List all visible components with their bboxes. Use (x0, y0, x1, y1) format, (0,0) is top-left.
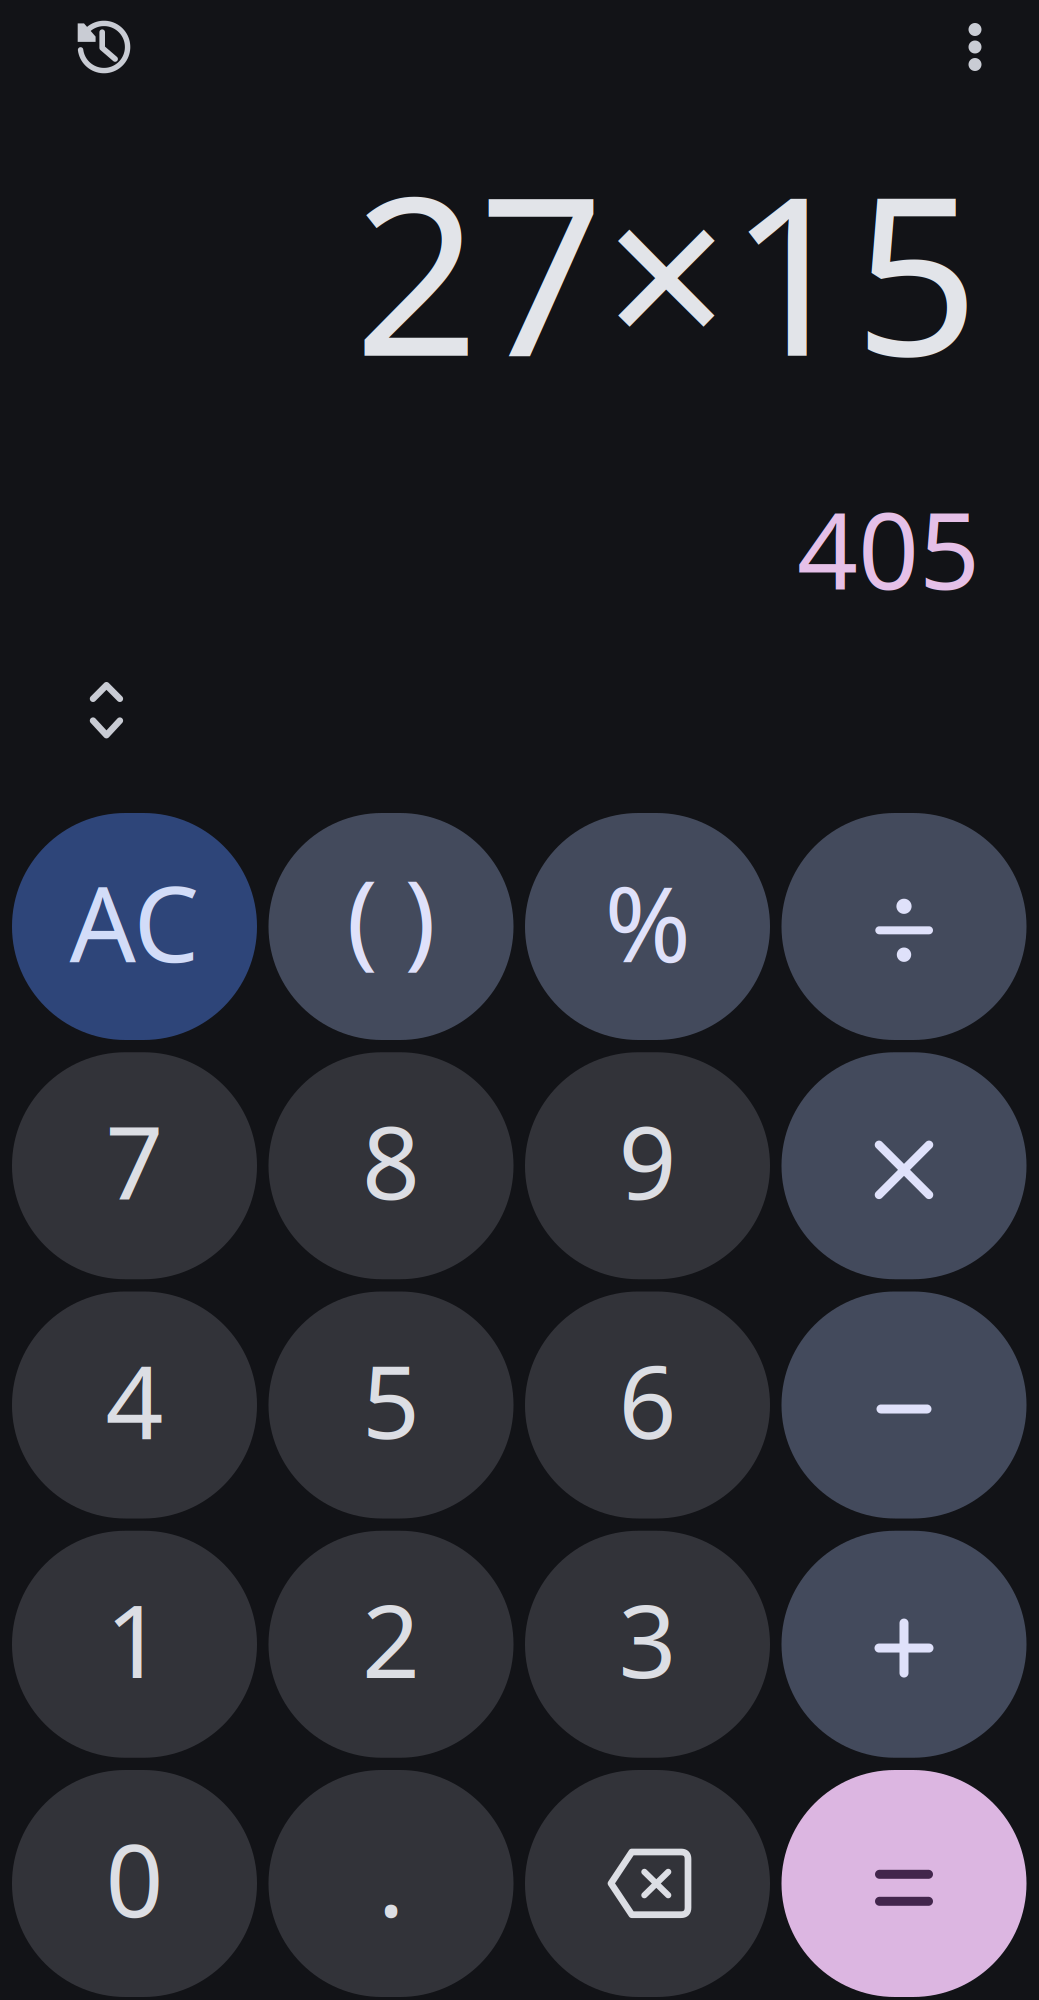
staticText: 0 (105, 1811, 163, 1945)
staticText: ( ) (346, 847, 435, 985)
button[interactable]: More options (927, 0, 1023, 95)
staticText: 2 (362, 1571, 420, 1706)
button[interactable]: History (49, 0, 159, 95)
button[interactable]: % (525, 813, 770, 1040)
staticText: 1 (105, 1571, 163, 1706)
button[interactable]: 1 (12, 1531, 257, 1758)
button[interactable]: Add (781, 1531, 1026, 1758)
button[interactable]: Backspace (525, 1770, 770, 1997)
button[interactable]: Divide (781, 813, 1026, 1040)
button[interactable]: 5 (268, 1291, 513, 1518)
staticText: 3 (618, 1571, 676, 1706)
button[interactable]: 2 (268, 1531, 513, 1758)
staticText: 5 (362, 1332, 420, 1467)
button[interactable]: 7 (12, 1052, 257, 1279)
button[interactable]: Expand history (58, 662, 154, 758)
staticText: 405 (797, 477, 980, 619)
staticText: 9 (618, 1093, 676, 1228)
button[interactable]: 8 (268, 1052, 513, 1279)
staticText: AC (69, 853, 199, 991)
button[interactable]: 0 (12, 1770, 257, 1997)
button[interactable]: Equals (781, 1770, 1026, 1997)
button[interactable]: AC (12, 813, 257, 1040)
staticText: 8 (362, 1093, 420, 1228)
staticText: % (604, 853, 690, 991)
staticText: 4 (105, 1332, 163, 1467)
button[interactable]: ( ) (268, 813, 513, 1040)
staticText: 7 (105, 1093, 163, 1228)
button[interactable]: Subtract (781, 1291, 1026, 1518)
staticText: 27×15 (354, 126, 979, 416)
staticText: . (377, 1811, 404, 1945)
staticText: 6 (618, 1332, 676, 1467)
button[interactable]: 4 (12, 1291, 257, 1518)
button[interactable]: 9 (525, 1052, 770, 1279)
button[interactable]: 3 (525, 1531, 770, 1758)
button[interactable]: . (268, 1770, 513, 1997)
button[interactable]: Multiply (781, 1052, 1026, 1279)
button[interactable]: 6 (525, 1291, 770, 1518)
